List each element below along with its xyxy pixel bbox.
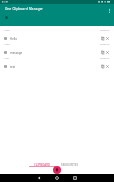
button[interactable]: 14:41 bbox=[0, 56, 114, 70]
button[interactable]: New clip bbox=[53, 166, 61, 174]
staticText: message bbox=[10, 51, 23, 55]
button[interactable]: 14:52 bbox=[0, 42, 114, 56]
staticText: 14:55 bbox=[4, 29, 10, 32]
button[interactable]: Home bbox=[53, 174, 61, 182]
staticText: 22/06/19 bbox=[100, 57, 110, 60]
button[interactable]: Recents bbox=[71, 174, 79, 182]
button[interactable]: More options bbox=[106, 7, 113, 14]
button[interactable]: Copy bbox=[100, 50, 105, 55]
button[interactable]: Delete bbox=[105, 36, 110, 41]
button[interactable]: Copy bbox=[100, 64, 105, 69]
staticText: 14:52 bbox=[4, 43, 10, 46]
button[interactable]: Delete bbox=[105, 64, 110, 69]
button[interactable]: Back bbox=[35, 174, 43, 182]
button[interactable]: CLIPBOARD bbox=[29, 162, 56, 174]
staticText: test bbox=[10, 65, 16, 69]
staticText: 22/06/19 bbox=[100, 29, 110, 32]
button[interactable]: 14:55 bbox=[0, 28, 114, 42]
staticText: FAVOURITES bbox=[61, 163, 79, 167]
staticText: 14:41 bbox=[4, 57, 10, 60]
staticText: CLIPBOARD bbox=[34, 163, 51, 167]
staticText: One Clipboard Manager bbox=[5, 7, 44, 11]
staticText: 22/06/19 bbox=[100, 43, 110, 46]
button[interactable]: FAVOURITES bbox=[56, 162, 83, 174]
staticText: Hello bbox=[10, 37, 18, 41]
button[interactable]: Delete bbox=[105, 50, 110, 55]
button[interactable]: Copy bbox=[100, 36, 105, 41]
